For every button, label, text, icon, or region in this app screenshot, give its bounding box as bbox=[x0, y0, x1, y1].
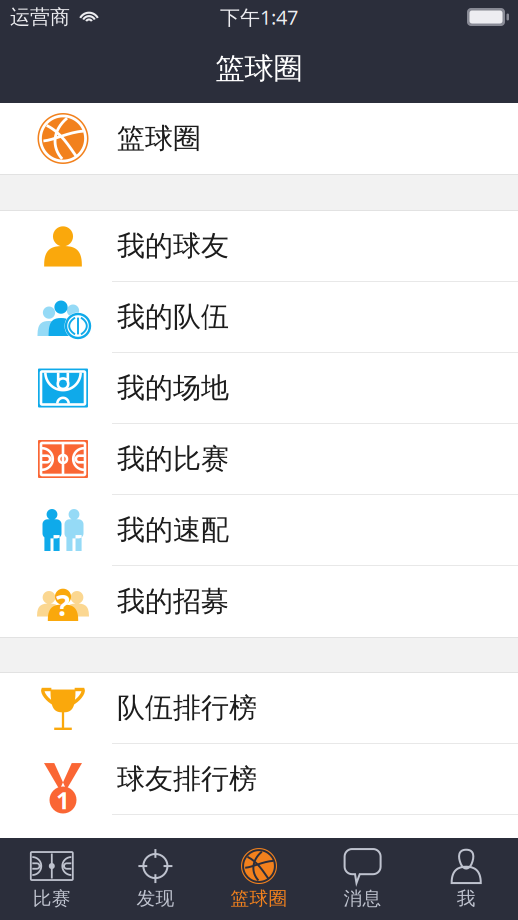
button[interactable]: 我的速配 bbox=[0, 495, 518, 566]
staticText: 我的速配 bbox=[117, 513, 229, 547]
staticText: 我 bbox=[457, 887, 476, 910]
staticText: 我的招募 bbox=[117, 584, 229, 619]
button[interactable]: ? bbox=[0, 566, 518, 637]
staticText: 发现 bbox=[136, 887, 174, 910]
staticText: 篮球圈 bbox=[215, 50, 302, 86]
staticText: 我的队伍 bbox=[117, 300, 229, 334]
staticText: 篮球圈 bbox=[117, 121, 201, 156]
button[interactable]: 篮球圈 bbox=[0, 103, 518, 174]
staticText: 比赛 bbox=[33, 887, 71, 910]
staticText: 我的比赛 bbox=[117, 442, 229, 476]
button[interactable]: 我的比赛 bbox=[0, 424, 518, 495]
button[interactable]: 篮球圈 bbox=[207, 834, 311, 920]
button[interactable]: 队伍排行榜 bbox=[0, 673, 518, 744]
staticText: 消息 bbox=[344, 887, 382, 910]
button[interactable]: 1 bbox=[0, 744, 518, 815]
staticText: 1 bbox=[56, 784, 70, 816]
button[interactable]: 发现 bbox=[104, 834, 207, 920]
staticText: 队伍排行榜 bbox=[117, 691, 257, 725]
staticText: 我的场地 bbox=[117, 371, 229, 405]
button[interactable]: 我的队伍 bbox=[0, 282, 518, 353]
staticText: 下午1:47 bbox=[220, 4, 298, 30]
staticText: 运营商 bbox=[10, 5, 70, 29]
staticText: 篮球圈 bbox=[230, 887, 287, 910]
staticText: 我的球友 bbox=[117, 229, 229, 263]
button[interactable]: 消息 bbox=[311, 834, 414, 920]
button[interactable]: 我的场地 bbox=[0, 353, 518, 424]
button[interactable]: 我的球友 bbox=[0, 211, 518, 282]
staticText: ? bbox=[56, 585, 70, 624]
staticText: 球友排行榜 bbox=[117, 762, 257, 796]
button[interactable]: 我 bbox=[414, 834, 518, 920]
button[interactable]: 比赛 bbox=[0, 834, 104, 920]
